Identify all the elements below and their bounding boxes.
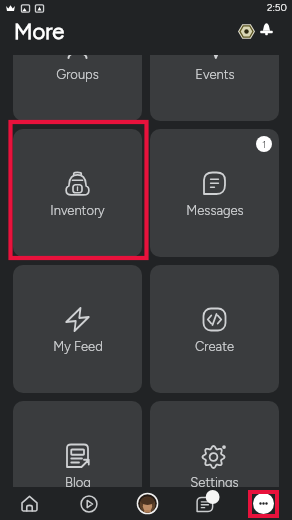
button[interactable]: Groups <box>13 55 142 121</box>
staticText: Messages <box>186 203 244 219</box>
staticText: 2:50 <box>267 1 287 13</box>
button[interactable]: Blog <box>13 401 142 487</box>
staticText: Inventory <box>50 203 105 219</box>
button[interactable]: Rewards <box>232 18 256 44</box>
button[interactable]: Inventory <box>13 129 142 257</box>
staticText: Events <box>195 67 235 83</box>
button[interactable]: Create <box>150 265 279 393</box>
button[interactable]: My Feed <box>13 265 142 393</box>
button[interactable]: Play <box>59 487 118 520</box>
staticText: Settings <box>190 475 239 487</box>
button[interactable]: Documents <box>176 487 234 520</box>
staticText: Groups <box>56 67 99 83</box>
staticText: Create <box>195 339 234 355</box>
staticText: My Feed <box>53 339 103 355</box>
button[interactable]: Home <box>0 487 59 520</box>
staticText: Blog <box>65 475 91 487</box>
button[interactable]: Notifications <box>256 18 276 44</box>
button[interactable]: Messages <box>150 129 279 257</box>
button[interactable]: Profile <box>118 487 176 520</box>
button[interactable]: More <box>253 493 274 514</box>
staticText: 1 <box>262 138 267 150</box>
staticText: More <box>14 18 65 44</box>
button[interactable]: Settings <box>150 401 279 487</box>
button[interactable]: Events <box>150 55 279 121</box>
